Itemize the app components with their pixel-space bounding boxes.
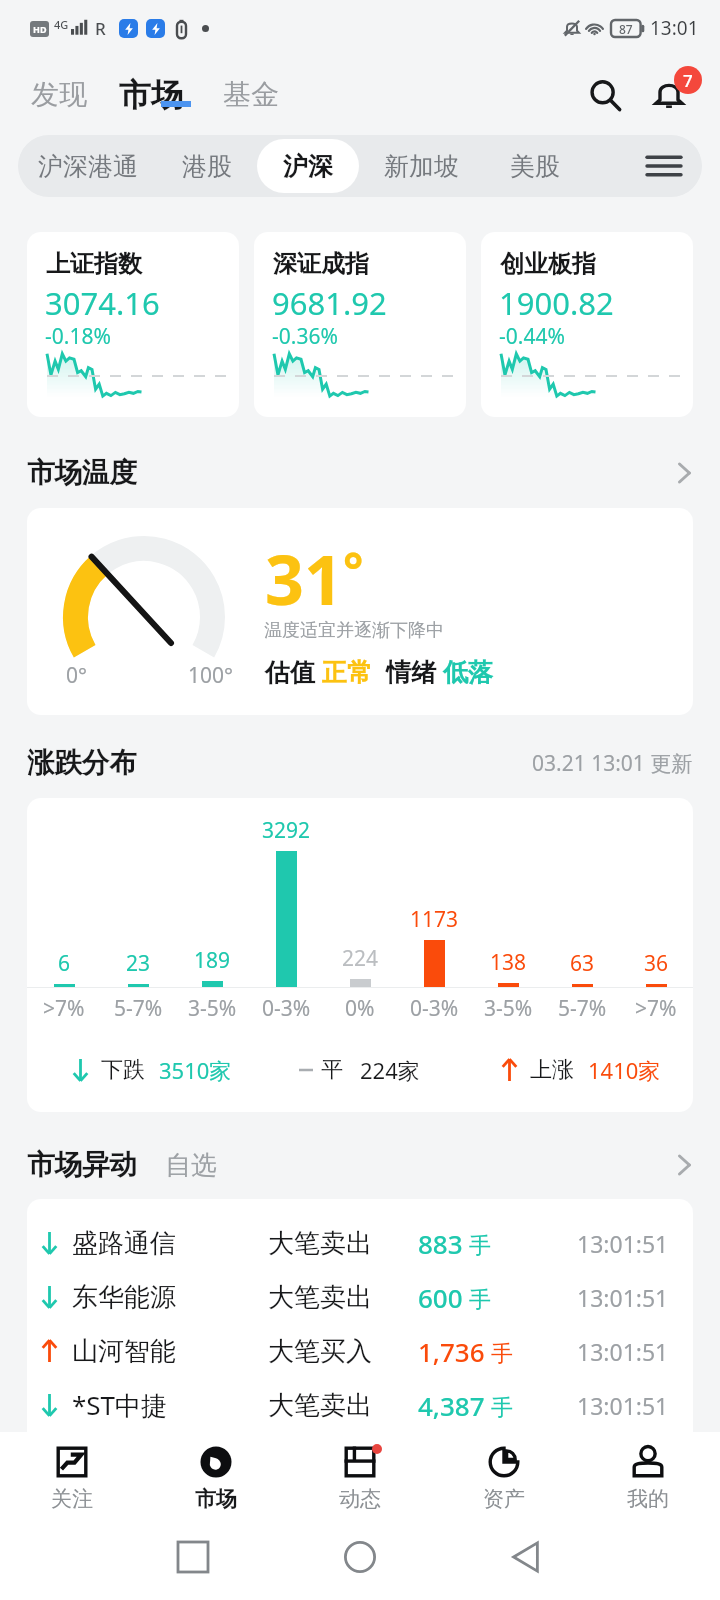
staticText: 13:01:51	[577, 1336, 669, 1367]
staticText: 基金	[223, 77, 279, 112]
staticText: 03.21 13:01 更新	[532, 749, 693, 778]
staticText: 883	[418, 1226, 463, 1261]
button[interactable]: 资产	[432, 1432, 576, 1522]
staticText: 1410家	[588, 1055, 661, 1085]
staticText: 市场异动	[27, 1148, 137, 1183]
staticText: 5-7%	[114, 994, 163, 1023]
button[interactable]: 我的	[576, 1432, 720, 1522]
staticText: 13:01	[650, 15, 699, 41]
button[interactable]: 动态	[288, 1432, 432, 1522]
staticText: 3510家	[159, 1055, 232, 1085]
button[interactable]: 关注	[0, 1432, 144, 1522]
staticText: 0-3%	[262, 994, 311, 1023]
staticText: 224家	[360, 1055, 420, 1085]
staticText: 138	[490, 948, 527, 977]
button[interactable]: 市场温度	[0, 438, 720, 508]
staticText: *ST中捷	[72, 1387, 168, 1423]
staticText: 情绪	[386, 657, 436, 688]
staticText: 动态	[339, 1486, 381, 1512]
button[interactable]: 创业板指	[481, 232, 693, 417]
staticText: 3074.16	[45, 282, 160, 324]
staticText: 13:01:51	[577, 1282, 669, 1313]
button[interactable]: 港股	[157, 151, 257, 182]
button[interactable]: 东华能源	[27, 1270, 693, 1324]
staticText: 63	[570, 949, 595, 978]
staticText: -0.36%	[272, 322, 338, 351]
button[interactable]: Back	[493, 1525, 557, 1589]
button[interactable]: 深证成指	[254, 232, 466, 417]
staticText: 13:01:51	[577, 1390, 669, 1421]
staticText: 1,736	[418, 1334, 485, 1369]
staticText: 0°	[66, 661, 87, 690]
button[interactable]: 市场异动	[0, 1130, 720, 1200]
staticText: 224	[342, 944, 379, 973]
staticText: 沪深港通	[38, 151, 138, 182]
staticText: 港股	[182, 151, 232, 182]
staticText: 盛路通信	[72, 1227, 176, 1260]
staticText: 1900.82	[499, 282, 614, 324]
staticText: -0.18%	[45, 322, 111, 351]
staticText: 自选	[165, 1149, 217, 1182]
staticText: R	[95, 17, 106, 40]
staticText: 36	[644, 949, 669, 978]
staticText: 3-5%	[188, 994, 237, 1023]
staticText: >7%	[635, 994, 677, 1023]
button[interactable]: 沪深港通	[19, 151, 157, 182]
staticText: 0-3%	[410, 994, 459, 1023]
staticText: 涨跌分布	[27, 746, 137, 781]
staticText: 6	[58, 949, 71, 978]
staticText: 600	[418, 1280, 463, 1315]
button[interactable]: 盛路通信	[27, 1216, 693, 1270]
button[interactable]: 发现	[26, 71, 92, 118]
staticText: 关注	[51, 1486, 93, 1512]
button[interactable]: *ST中捷	[27, 1378, 693, 1432]
staticText: 温度适宜并逐渐下降中	[264, 619, 444, 642]
button[interactable]: 基金	[218, 71, 284, 118]
staticText: 大笔卖出	[268, 1281, 372, 1314]
staticText: HD	[33, 23, 47, 35]
staticText: -0.44%	[499, 322, 565, 351]
staticText: 大笔买入	[268, 1335, 372, 1368]
staticText: 美股	[510, 151, 560, 182]
staticText: 4,387	[418, 1388, 485, 1423]
staticText: 低落	[443, 657, 493, 688]
button[interactable]: 市场	[114, 72, 188, 118]
staticText: 100°	[188, 661, 234, 690]
staticText: 上涨	[530, 1056, 574, 1084]
staticText: 13:01:51	[577, 1228, 669, 1259]
staticText: 上证指数	[46, 249, 142, 279]
staticText: 东华能源	[72, 1281, 176, 1314]
staticText: 0%	[345, 994, 375, 1023]
staticText: >7%	[43, 994, 85, 1023]
staticText: 5-7%	[558, 994, 607, 1023]
button[interactable]: 0°	[27, 508, 693, 715]
staticText: 市场	[119, 75, 183, 115]
staticText: 9681.92	[272, 282, 387, 324]
button[interactable]: More markets	[626, 135, 702, 197]
staticText: 沪深	[283, 151, 333, 182]
button[interactable]: Home	[328, 1525, 392, 1589]
button[interactable]: 沪深	[257, 139, 359, 193]
button[interactable]: 山河智能	[27, 1324, 693, 1378]
staticText: 深证成指	[273, 249, 369, 279]
staticText: 手	[469, 1286, 491, 1314]
staticText: 正常	[322, 657, 372, 688]
staticText: 189	[194, 946, 231, 975]
button[interactable]: 新加坡	[359, 151, 484, 182]
staticText: 下跌	[101, 1056, 145, 1084]
button[interactable]: 涨跌分布	[0, 728, 720, 798]
button[interactable]: 美股	[484, 151, 586, 182]
button[interactable]: 市场	[144, 1432, 288, 1522]
staticText: 新加坡	[384, 151, 459, 182]
staticText: 手	[491, 1394, 513, 1422]
button[interactable]: Recents	[161, 1525, 225, 1589]
staticText: 资产	[483, 1486, 525, 1512]
staticText: 市场温度	[27, 456, 137, 491]
button[interactable]: 上证指数	[27, 232, 239, 417]
staticText: 发现	[31, 77, 87, 112]
button[interactable]: Search	[576, 66, 634, 124]
staticText: 1173	[410, 905, 459, 934]
staticText: 手	[491, 1340, 513, 1368]
button[interactable]: Notifications	[640, 66, 698, 124]
staticText: 31	[265, 532, 343, 625]
